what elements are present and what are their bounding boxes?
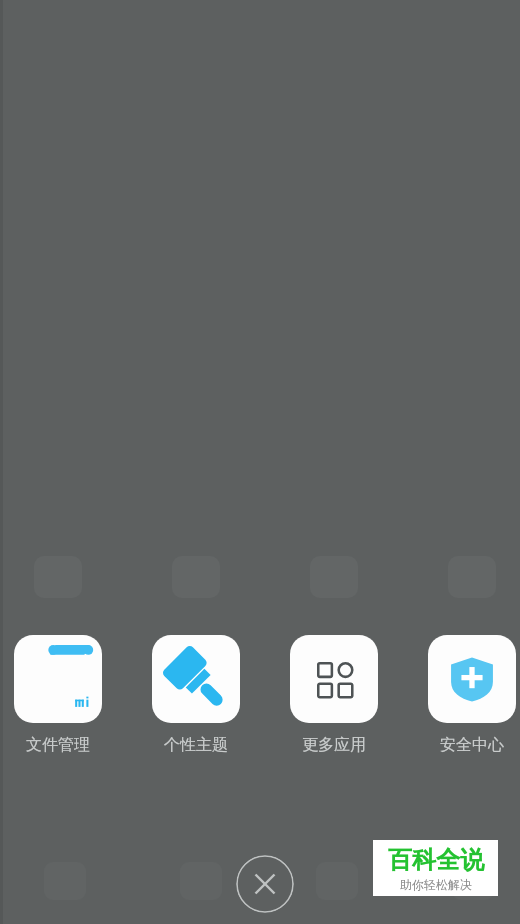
staticText: 百科全说 [388,845,484,875]
staticText: 文件管理 [14,735,102,755]
button[interactable]: 更多应用 [290,635,378,755]
staticText: 安全中心 [428,735,516,755]
button[interactable]: 关闭 [236,855,294,913]
staticText: 个性主题 [152,735,240,755]
staticText: 助你轻松解决 [400,877,472,892]
button[interactable]: 安全中心 [428,635,516,755]
button[interactable]: 个性主题 [152,635,240,755]
button[interactable]: 百科全说 [373,840,498,896]
button[interactable]: 文件管理 [14,635,102,755]
staticText: 更多应用 [290,735,378,755]
